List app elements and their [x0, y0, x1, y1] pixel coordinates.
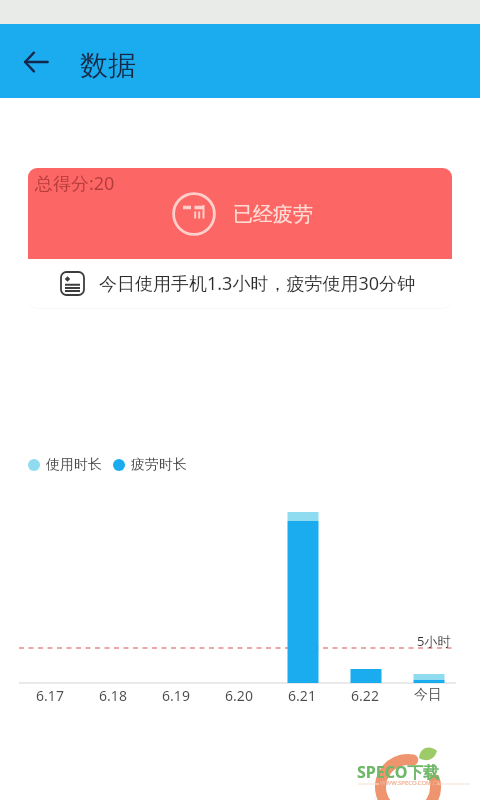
staticText: 6.20 — [225, 686, 253, 705]
staticText: 疲劳时长 — [131, 456, 187, 474]
staticText: 6.19 — [162, 686, 190, 705]
staticText: 5小时 — [417, 632, 451, 650]
staticText: 今日 — [414, 686, 442, 704]
staticText: 6.17 — [36, 686, 64, 705]
button[interactable]: 今日使用手机1.3小时，疲劳使用30分钟 — [28, 259, 452, 308]
staticText: 今日使用手机1.3小时，疲劳使用30分钟 — [99, 271, 416, 296]
staticText: 已经疲劳 — [233, 202, 313, 227]
button[interactable]: Back — [12, 38, 60, 86]
staticText: 使用时长 — [46, 456, 102, 474]
staticText: 数据 — [80, 48, 136, 83]
staticText: 6.22 — [351, 686, 379, 705]
staticText: WWW.SPECO.COM.CN — [380, 779, 442, 787]
staticText: 6.21 — [288, 686, 316, 705]
staticText: 总得分:20 — [35, 171, 115, 196]
staticText: SPECO下载 — [357, 761, 440, 783]
staticText: 6.18 — [99, 686, 127, 705]
button[interactable]: 总得分:20 — [28, 168, 452, 259]
